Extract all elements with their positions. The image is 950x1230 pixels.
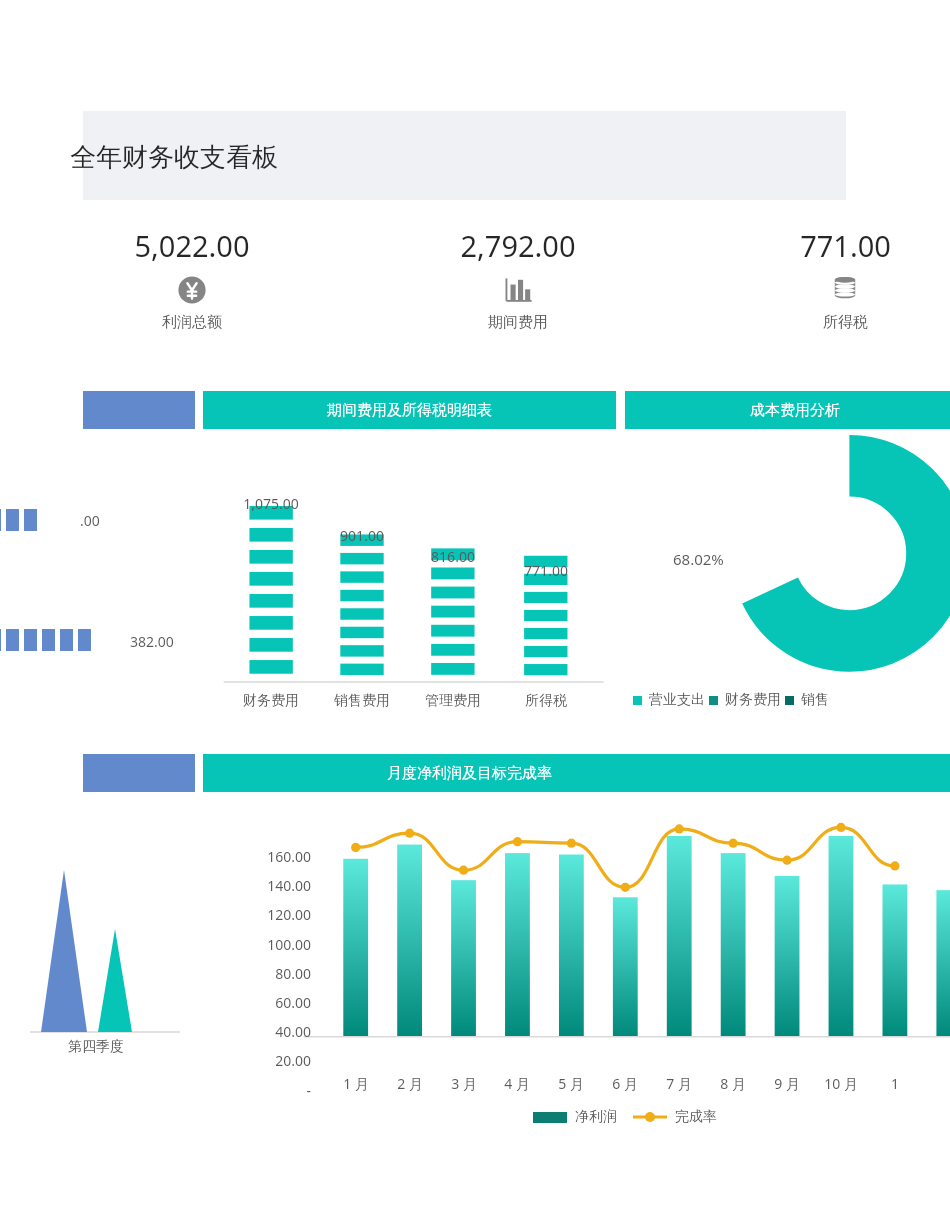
staticText: 2 月 [380,1074,440,1093]
button[interactable]: 营业支出 [633,691,705,709]
button[interactable]: 销售 [785,691,829,709]
staticText: 20.00 [233,1051,311,1070]
staticText: 120.00 [233,905,311,924]
staticText: 第四季度 [68,1038,124,1056]
staticText: 全年财务收支看板 [70,141,278,174]
button[interactable] [83,111,846,200]
staticText: 4 月 [487,1074,547,1093]
button[interactable]: 成本费用分析 [625,391,950,725]
staticText: - [233,1081,311,1100]
staticText: 财务费用 [725,691,781,709]
button[interactable]: 净利润 [533,1108,617,1126]
staticText: 所得税 [823,313,868,332]
staticText: 40.00 [233,1022,311,1041]
staticText: 利润总额 [162,313,222,332]
staticText: 完成率 [675,1108,717,1126]
button[interactable]: 财务费用 [709,691,781,709]
staticText: 140.00 [233,876,311,895]
staticText: 1,075.00 [229,494,313,513]
staticText: 68.02% [673,549,724,569]
staticText: 所得税 [504,692,588,710]
staticText: 7 月 [649,1074,709,1093]
staticText: 771.00 [800,226,891,265]
staticText: 净利润 [575,1108,617,1126]
button[interactable]: 771.00 [750,226,940,336]
staticText: 6 月 [595,1074,655,1093]
button[interactable] [83,391,195,725]
staticText: 816.00 [411,547,495,566]
staticText: 160.00 [233,847,311,866]
staticText: 管理费用 [411,692,495,710]
staticText: 营业支出 [649,691,705,709]
button[interactable]: 期间费用及所得税明细表 [203,391,616,725]
staticText: 期间费用及所得税明细表 [327,401,492,420]
staticText: 3 月 [434,1074,494,1093]
staticText: .00 [80,511,100,530]
staticText: 8 月 [703,1074,763,1093]
button[interactable] [83,754,195,1100]
staticText: 80.00 [233,964,311,983]
staticText: 901.00 [320,526,404,545]
staticText: 财务费用 [229,692,313,710]
staticText: 月度净利润及目标完成率 [387,764,552,783]
button[interactable]: 2,792.00 [423,226,613,336]
staticText: 60.00 [233,993,311,1012]
staticText: 382.00 [130,632,174,651]
staticText: 成本费用分析 [750,401,840,420]
staticText: 10 月 [811,1074,871,1093]
staticText: 1 [865,1074,925,1093]
staticText: 100.00 [233,935,311,954]
staticText: 9 月 [757,1074,817,1093]
staticText: 期间费用 [488,313,548,332]
staticText: 1 月 [326,1074,386,1093]
button[interactable]: 5,022.00 [97,226,287,336]
staticText: 771.00 [504,561,588,580]
button[interactable]: 完成率 [633,1108,717,1126]
button[interactable]: 月度净利润及目标完成率 [203,754,950,1100]
staticText: 2,792.00 [460,226,576,265]
staticText: 5,022.00 [134,226,250,265]
staticText: 5 月 [541,1074,601,1093]
staticText: 销售 [801,691,829,709]
staticText: 销售费用 [320,692,404,710]
